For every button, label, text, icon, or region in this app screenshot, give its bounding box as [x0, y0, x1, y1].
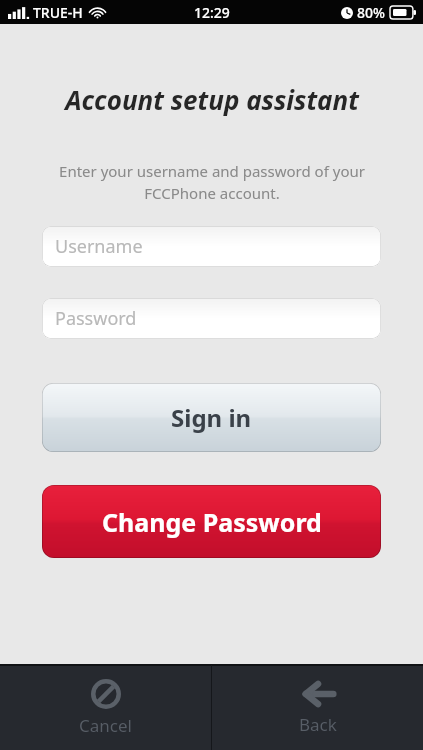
staticText: Password	[55, 306, 137, 331]
staticText: TRUE-H	[33, 3, 83, 22]
staticText: Cancel	[79, 714, 132, 737]
staticText: Username	[55, 234, 143, 259]
staticText: 12:29	[194, 3, 230, 22]
button[interactable]: Username	[42, 226, 381, 267]
staticText: Account setup assistant	[65, 82, 359, 117]
button[interactable]: Change Password	[42, 485, 381, 558]
staticText: Sign in	[171, 401, 252, 434]
staticText: Enter your username and password of your…	[59, 161, 365, 204]
button[interactable]: Cancel	[0, 665, 211, 750]
button[interactable]: Password	[42, 298, 381, 339]
staticText: 80%	[357, 3, 385, 22]
button[interactable]: Sign in	[42, 383, 381, 452]
button[interactable]: Back	[212, 665, 423, 750]
staticText: Change Password	[102, 505, 322, 539]
staticText: Back	[299, 713, 337, 736]
